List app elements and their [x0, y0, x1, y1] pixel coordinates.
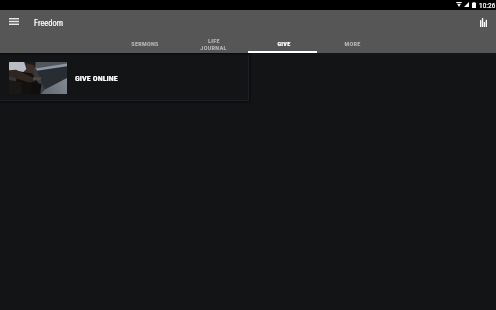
staticText: LIFE — [208, 37, 220, 44]
staticText: SERMONS — [131, 40, 159, 47]
button[interactable]: MORE — [318, 33, 387, 54]
staticText: MORE — [344, 40, 361, 47]
button[interactable]: Statistics — [474, 13, 493, 32]
staticText: 10:26 — [479, 1, 496, 10]
staticText: Freedom — [34, 18, 63, 28]
button[interactable]: Open navigation drawer — [3, 12, 25, 31]
staticText: JOURNAL — [200, 44, 227, 51]
button[interactable]: GIVE ONLINE — [0, 55, 249, 101]
staticText: GIVE — [277, 40, 291, 47]
button[interactable]: LIFE — [179, 33, 248, 54]
button[interactable]: GIVE — [249, 33, 318, 54]
staticText: GIVE ONLINE — [75, 74, 118, 83]
button[interactable]: SERMONS — [110, 33, 179, 54]
